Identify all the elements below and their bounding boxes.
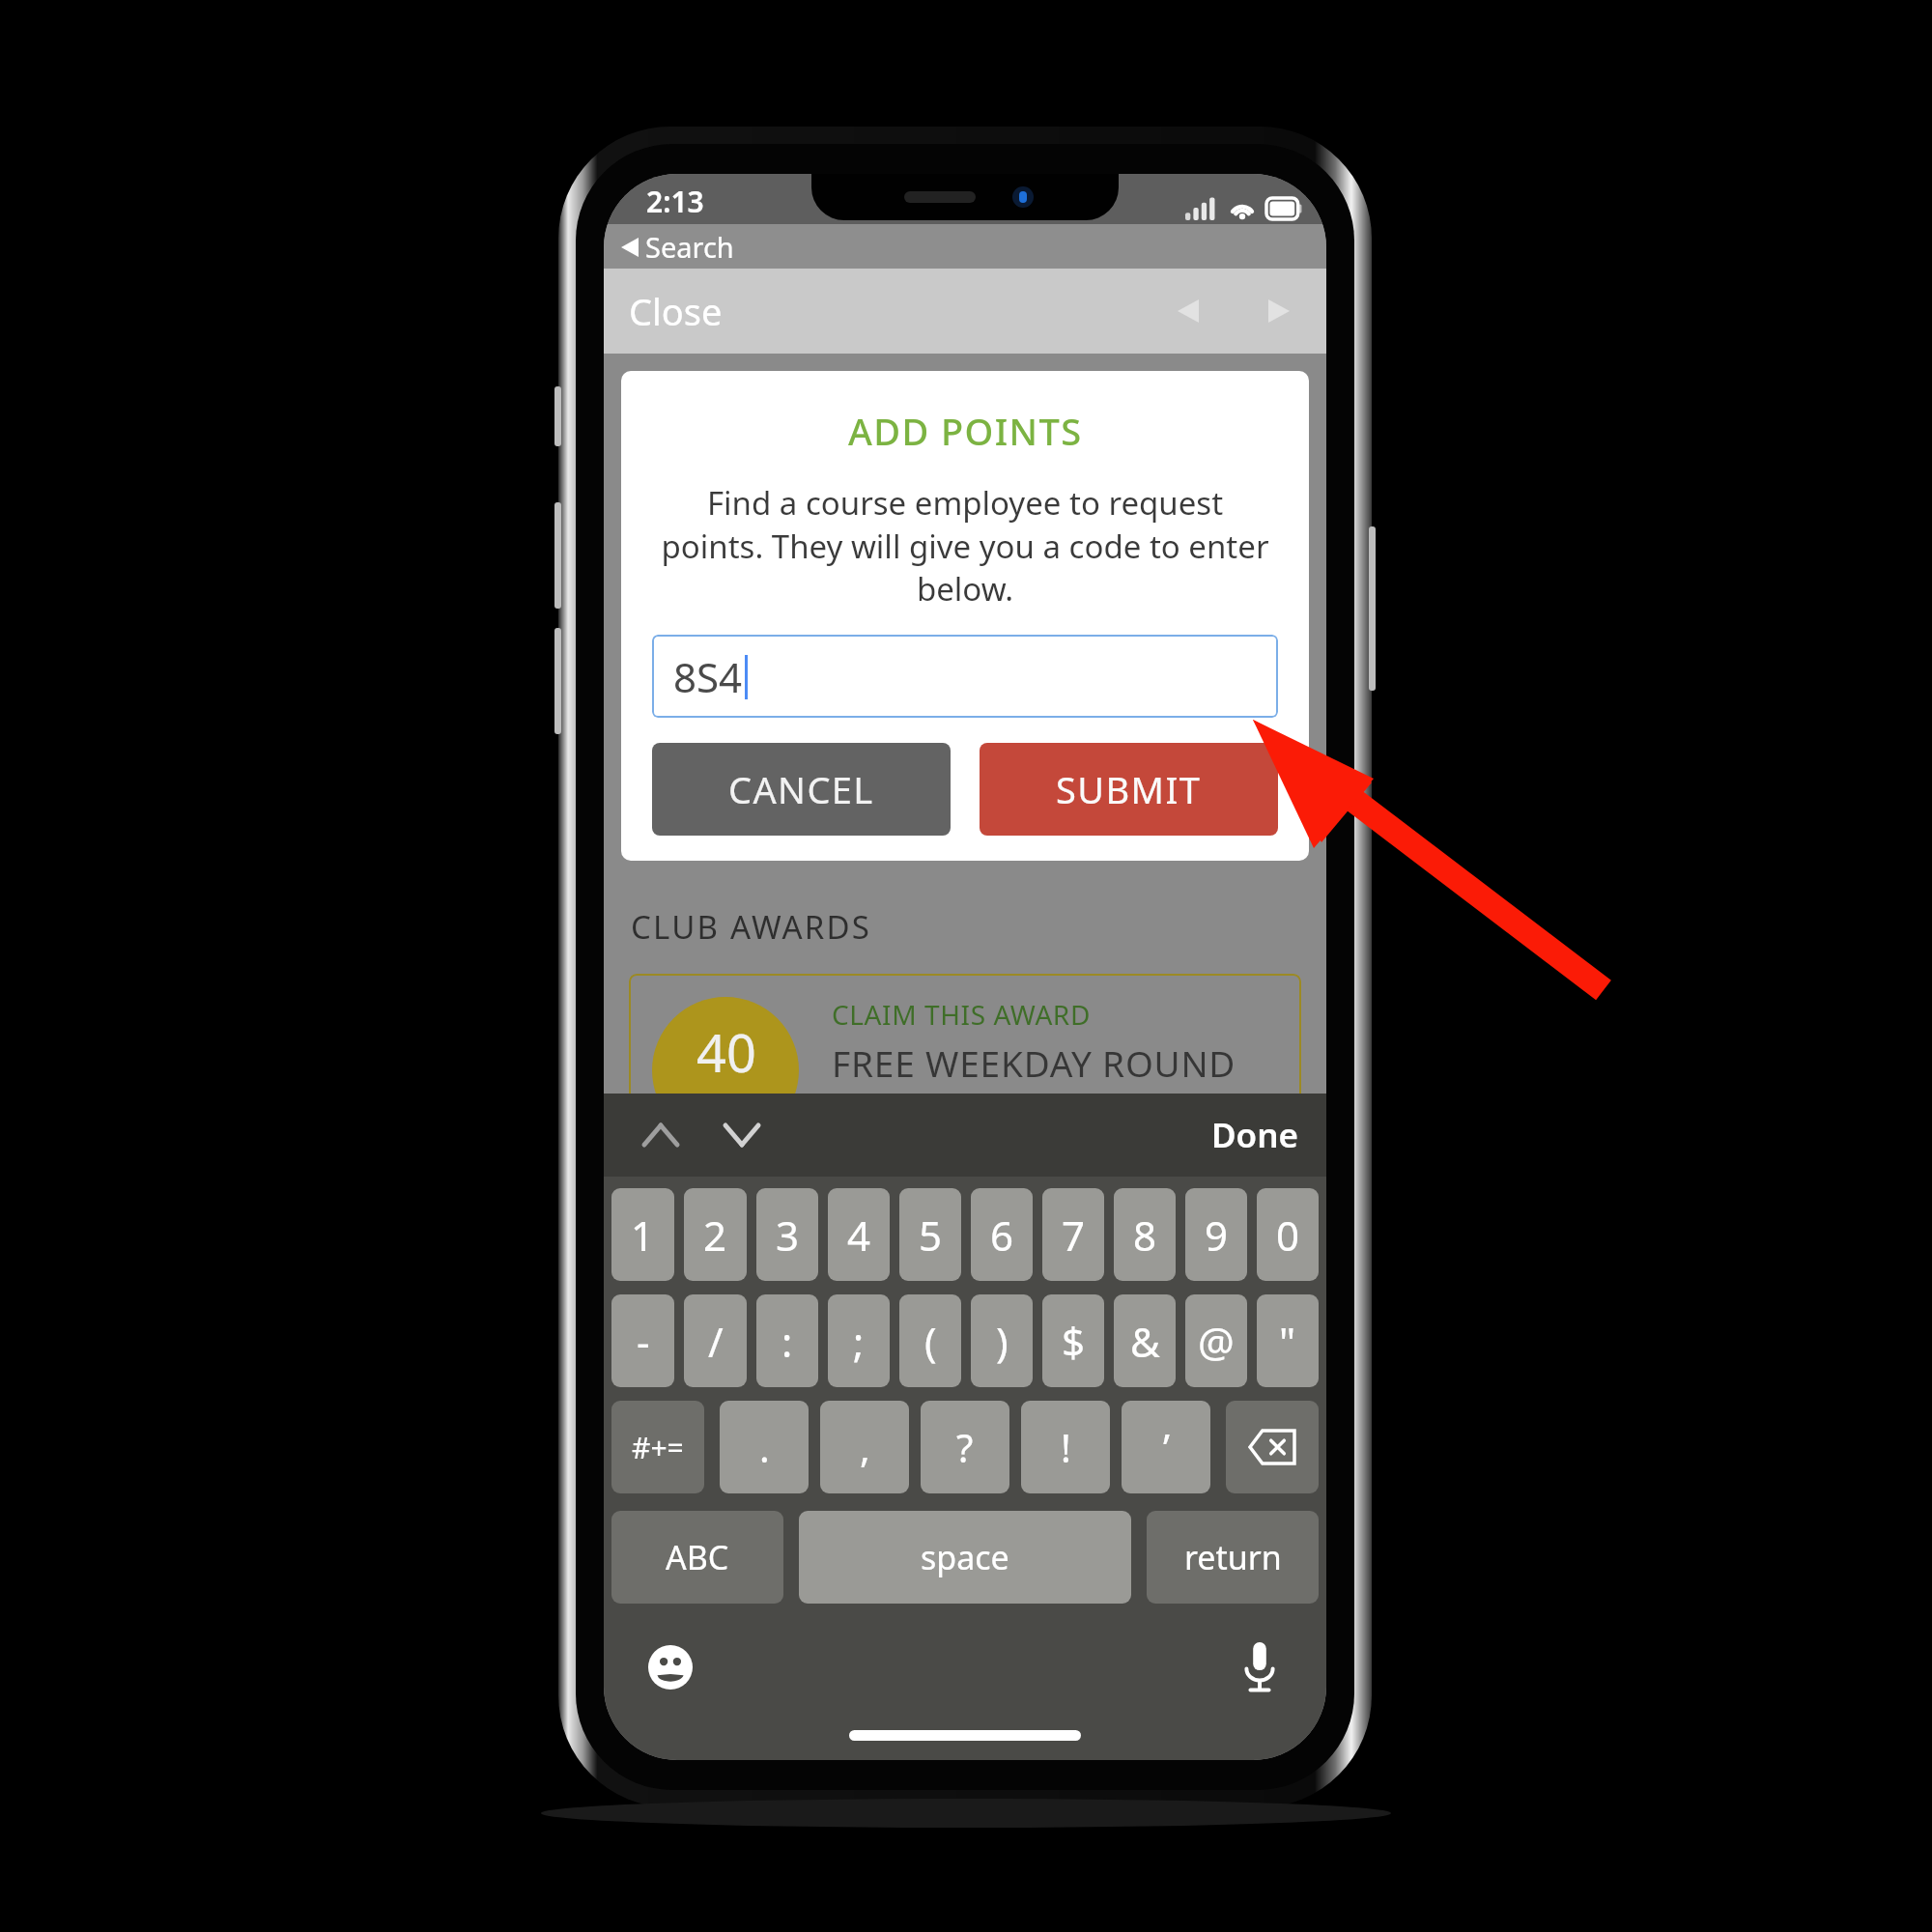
button[interactable]: Dictation (1226, 1634, 1293, 1701)
staticText: & (1130, 1314, 1160, 1369)
button[interactable]: 0 (1257, 1188, 1319, 1281)
button[interactable]: Emoji keyboard (637, 1634, 704, 1701)
staticText: ’ (1163, 1421, 1170, 1473)
staticText: ABC (666, 1535, 729, 1579)
staticText: 9 (1205, 1207, 1229, 1263)
staticText: Find a course employee to request points… (654, 481, 1276, 610)
button[interactable]: Next field (712, 1105, 772, 1165)
staticText: #+= (632, 1428, 684, 1467)
staticText: 8 (1133, 1207, 1157, 1263)
staticText: " (1279, 1314, 1296, 1369)
button[interactable]: 7 (1042, 1188, 1104, 1281)
button[interactable]: 8S4 (652, 635, 1278, 718)
button[interactable]: ! (1021, 1401, 1110, 1493)
button[interactable]: #+= (611, 1401, 704, 1493)
staticText: $ (1062, 1314, 1086, 1369)
staticText: CANCEL (728, 764, 874, 814)
button[interactable]: : (756, 1294, 818, 1387)
staticText: 7 (1062, 1207, 1086, 1263)
button[interactable]: Search (604, 224, 1326, 269)
button[interactable]: return (1147, 1511, 1319, 1604)
button[interactable]: 3 (756, 1188, 818, 1281)
staticText: Points (685, 1088, 767, 1125)
staticText: 2 (703, 1207, 727, 1263)
button[interactable]: Previous (1162, 285, 1214, 337)
button[interactable]: 40 (629, 974, 1301, 1167)
button[interactable]: SUBMIT (980, 743, 1278, 836)
button[interactable]: 4 (828, 1188, 890, 1281)
button[interactable]: space (799, 1511, 1131, 1604)
button[interactable]: ; (828, 1294, 890, 1387)
staticText: 6 (990, 1207, 1014, 1263)
button[interactable]: - (611, 1294, 674, 1387)
staticText: 4 (847, 1207, 871, 1263)
button[interactable]: ABC (611, 1511, 783, 1604)
button[interactable]: @ (1185, 1294, 1247, 1387)
staticText: : (781, 1314, 793, 1369)
staticText: 8S4 (673, 649, 743, 704)
button[interactable]: / (684, 1294, 747, 1387)
button[interactable]: ) (971, 1294, 1033, 1387)
staticText: - (637, 1314, 650, 1369)
staticText: return (1184, 1535, 1282, 1579)
button[interactable]: 8 (1114, 1188, 1176, 1281)
button[interactable]: Previous field (631, 1105, 691, 1165)
staticText: / (708, 1314, 724, 1369)
staticText: 0 (1276, 1207, 1300, 1263)
staticText: ! (1061, 1421, 1071, 1473)
button[interactable]: 9 (1185, 1188, 1247, 1281)
staticText: Search (645, 228, 734, 266)
button[interactable]: Next (1253, 285, 1305, 337)
staticText: FREE WEEKDAY ROUND (832, 1038, 1236, 1087)
button[interactable]: Done (1211, 1112, 1299, 1158)
staticText: 2:13 (646, 182, 704, 221)
staticText: . (759, 1421, 770, 1473)
button[interactable]: & (1114, 1294, 1176, 1387)
button[interactable]: 6 (971, 1188, 1033, 1281)
button[interactable]: $ (1042, 1294, 1104, 1387)
button[interactable]: , (820, 1401, 909, 1493)
button[interactable]: ’ (1122, 1401, 1210, 1493)
staticText: ADD POINTS (848, 406, 1083, 456)
button[interactable]: " (1257, 1294, 1319, 1387)
staticText: 5 (919, 1207, 943, 1263)
staticText: space (921, 1535, 1009, 1579)
staticText: ? (956, 1421, 974, 1473)
button[interactable]: ( (899, 1294, 961, 1387)
staticText: SUBMIT (1056, 764, 1202, 814)
button[interactable]: CANCEL (652, 743, 951, 836)
staticText: ( (924, 1314, 937, 1369)
button[interactable]: 2 (684, 1188, 747, 1281)
button[interactable]: ? (921, 1401, 1009, 1493)
button[interactable]: Backspace (1226, 1401, 1319, 1493)
staticText: ; (853, 1314, 865, 1369)
button[interactable]: . (720, 1401, 809, 1493)
button[interactable]: 1 (611, 1188, 674, 1281)
staticText: @ (1198, 1314, 1235, 1369)
button[interactable]: Close (629, 286, 723, 336)
staticText: 1 (631, 1207, 655, 1263)
staticText: 40 (696, 1016, 756, 1088)
staticText: CLAIM THIS AWARD (832, 996, 1091, 1033)
staticText: , (860, 1421, 870, 1473)
button[interactable]: 5 (899, 1188, 961, 1281)
staticText: ) (996, 1314, 1009, 1369)
staticText: CLUB AWARDS (631, 905, 872, 949)
staticText: 3 (776, 1207, 800, 1263)
